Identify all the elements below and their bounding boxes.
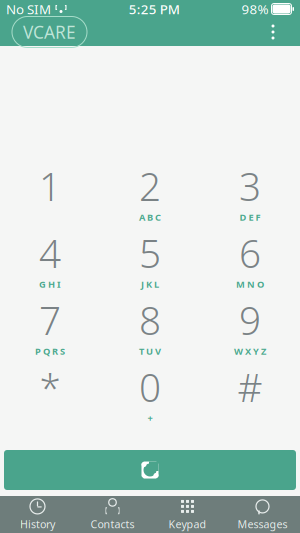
button[interactable]: 2 xyxy=(100,158,200,225)
button[interactable]: Keypad xyxy=(150,496,225,533)
staticText: J K L xyxy=(141,278,159,290)
staticText: * xyxy=(39,361,60,413)
button[interactable]: History xyxy=(0,496,75,533)
staticText: VCARE xyxy=(23,20,76,43)
button[interactable]: VCARE xyxy=(12,16,87,47)
button[interactable]: 8 xyxy=(100,292,200,359)
staticText: 5:25 PM xyxy=(129,0,180,18)
staticText: Contacts xyxy=(90,517,134,531)
staticText: T U V xyxy=(139,345,161,357)
staticText: 1 xyxy=(39,160,61,212)
staticText: 2 xyxy=(139,160,161,212)
button[interactable]: More options xyxy=(258,18,288,46)
button[interactable]: # xyxy=(200,359,300,426)
staticText: # xyxy=(237,361,262,413)
staticText: + xyxy=(147,412,152,424)
button[interactable]: 6 xyxy=(200,225,300,292)
staticText: 0 xyxy=(139,361,161,413)
button[interactable]: 3 xyxy=(200,158,300,225)
button[interactable]: 7 xyxy=(0,292,100,359)
staticText: No SIM xyxy=(6,0,51,18)
staticText: 4 xyxy=(39,227,61,279)
button[interactable]: 4 xyxy=(0,225,100,292)
staticText: M N O xyxy=(236,278,264,290)
button[interactable]: * xyxy=(0,359,100,426)
button[interactable]: Contacts xyxy=(75,496,150,533)
staticText: History xyxy=(20,517,55,531)
staticText: 5 xyxy=(139,227,161,279)
staticText: G H I xyxy=(39,278,61,290)
staticText: Messages xyxy=(237,517,287,531)
button[interactable]: 5 xyxy=(100,225,200,292)
staticText: 6 xyxy=(239,227,261,279)
staticText: P Q R S xyxy=(35,345,65,357)
button[interactable]: 0 xyxy=(100,359,200,426)
staticText: W X Y Z xyxy=(234,345,266,357)
button[interactable]: Call xyxy=(0,450,300,496)
staticText: D E F xyxy=(239,211,260,223)
staticText: 3 xyxy=(239,160,261,212)
staticText: A B C xyxy=(139,211,161,223)
staticText: 8 xyxy=(139,294,161,346)
staticText: 9 xyxy=(239,294,261,346)
staticText: 7 xyxy=(39,294,61,346)
staticText: Keypad xyxy=(168,517,206,531)
staticText: 98% xyxy=(241,0,268,18)
button[interactable]: 9 xyxy=(200,292,300,359)
button[interactable]: Messages xyxy=(225,496,300,533)
button[interactable]: 1 xyxy=(0,158,100,225)
